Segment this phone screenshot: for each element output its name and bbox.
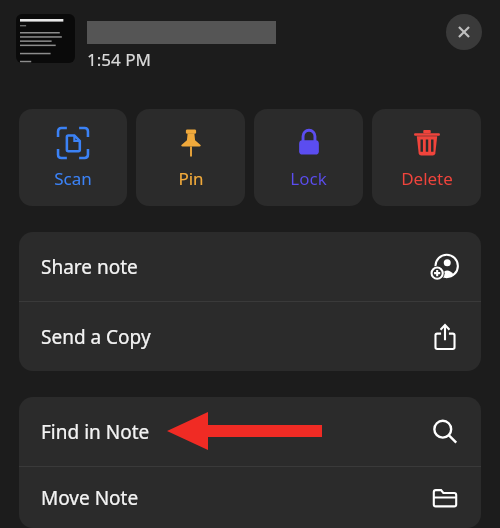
button[interactable]: Send a Copy xyxy=(19,302,481,371)
button[interactable]: Scan xyxy=(19,109,127,206)
button[interactable]: Close xyxy=(446,14,482,50)
button[interactable]: Find in Note xyxy=(19,397,481,466)
staticText: Scan xyxy=(54,167,92,190)
staticText: Share note xyxy=(41,254,138,280)
button[interactable]: Lock xyxy=(254,109,363,206)
staticText: Pin xyxy=(178,167,204,190)
staticText: Move Note xyxy=(41,485,139,511)
button[interactable]: Move Note xyxy=(19,467,481,528)
staticText: Find in Note xyxy=(41,419,150,445)
button[interactable]: Share note xyxy=(19,232,481,301)
button[interactable]: Delete xyxy=(372,109,481,206)
staticText: Lock xyxy=(290,167,327,190)
staticText: Delete xyxy=(401,167,453,190)
staticText: 1:54 PM xyxy=(87,48,151,70)
staticText: Send a Copy xyxy=(41,324,151,350)
button[interactable]: Note preview xyxy=(16,14,75,63)
button[interactable]: Pin xyxy=(136,109,245,206)
